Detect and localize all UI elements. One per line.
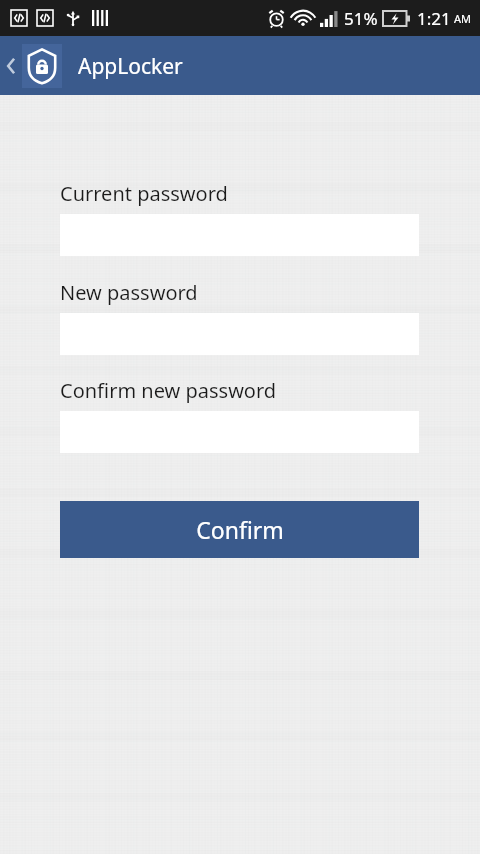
staticText: 1:21 [417, 7, 451, 30]
button[interactable]: Navigate up [0, 38, 64, 94]
staticText: AM [454, 11, 472, 26]
staticText: New password [60, 279, 198, 306]
staticText: Confirm new password [60, 377, 277, 404]
staticText: Current password [60, 180, 228, 207]
button[interactable]: Confirm [60, 501, 419, 558]
staticText: AppLocker [78, 52, 183, 81]
staticText: 51% [344, 7, 378, 30]
staticText: Confirm [196, 514, 284, 545]
